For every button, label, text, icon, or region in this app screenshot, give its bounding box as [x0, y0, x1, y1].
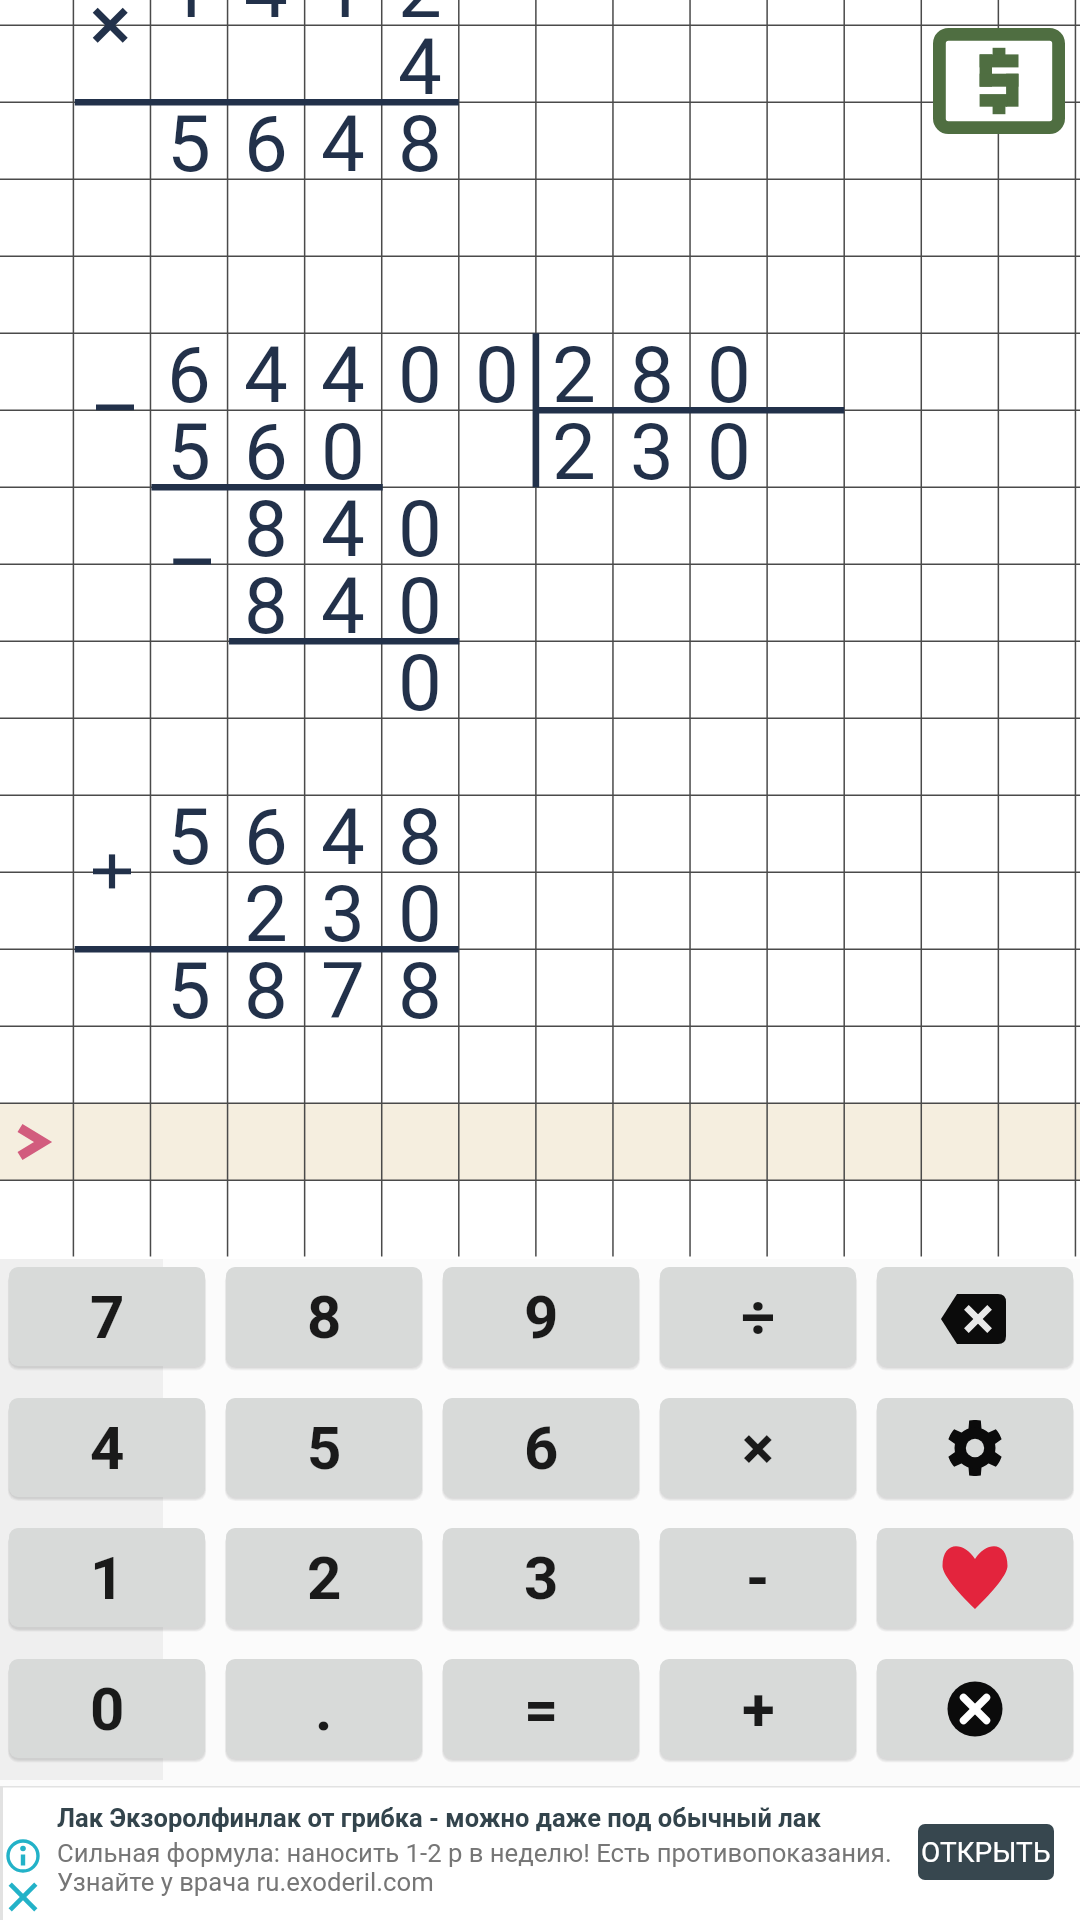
staticText: 0	[90, 1674, 125, 1744]
staticText: 8	[221, 561, 311, 652]
button[interactable]: 7	[9, 1267, 205, 1366]
button[interactable]: Favourites	[877, 1528, 1073, 1627]
button[interactable]: Clear all	[877, 1659, 1073, 1758]
staticText: 6	[144, 330, 234, 421]
staticText: 0	[375, 484, 465, 575]
staticText: 0	[375, 869, 465, 960]
staticText: 0	[452, 330, 542, 421]
staticText: +	[742, 1674, 775, 1744]
staticText: 1	[144, 0, 234, 36]
button[interactable]: 2	[226, 1528, 422, 1627]
staticText: 5	[144, 792, 234, 883]
staticText: 4	[375, 22, 465, 113]
button[interactable]: .	[226, 1659, 422, 1758]
staticText: 1	[298, 0, 388, 36]
staticText: 6	[221, 407, 311, 498]
staticText: 4	[221, 0, 311, 36]
staticText: 5	[144, 407, 234, 498]
staticText: 0	[375, 638, 465, 729]
button[interactable]: =	[443, 1659, 639, 1758]
button[interactable]: 9	[443, 1267, 639, 1366]
staticText: 4	[298, 792, 388, 883]
staticText: 0	[298, 407, 388, 498]
staticText: 3	[524, 1543, 559, 1613]
staticText: Сильная формула: наносить 1-2 р в неделю…	[57, 1838, 892, 1868]
button[interactable]: Backspace	[877, 1267, 1073, 1366]
button[interactable]: 3	[443, 1528, 639, 1627]
staticText: 6	[221, 99, 311, 190]
staticText: 4	[298, 561, 388, 652]
staticText: 8	[375, 792, 465, 883]
staticText: Лак Экзоролфинлак от грибка - можно даже…	[57, 1803, 821, 1833]
staticText: 2	[529, 330, 619, 421]
staticText: 0	[375, 561, 465, 652]
button[interactable]: 5	[226, 1398, 422, 1497]
staticText: 6	[524, 1413, 559, 1483]
staticText: 1	[90, 1543, 125, 1613]
staticText: 8	[375, 99, 465, 190]
staticText: 4	[298, 99, 388, 190]
staticText: 5	[144, 99, 234, 190]
button[interactable]: 0	[9, 1659, 205, 1758]
staticText: 4	[90, 1413, 125, 1483]
button[interactable]: 1	[9, 1528, 205, 1627]
staticText: 2	[221, 869, 311, 960]
staticText: 8	[307, 1282, 342, 1352]
staticText: 0	[684, 407, 774, 498]
button[interactable]: Ad information	[1, 1834, 45, 1878]
button[interactable]: +	[660, 1659, 856, 1758]
staticText: ОТКРЫТЬ	[921, 1836, 1051, 1869]
staticText: 3	[607, 407, 697, 498]
staticText: 5	[307, 1413, 342, 1483]
staticText: ×	[742, 1413, 774, 1483]
staticText: 4	[298, 330, 388, 421]
staticText: ÷	[741, 1282, 776, 1352]
staticText: 5	[144, 946, 234, 1037]
button[interactable]: 6	[443, 1398, 639, 1497]
staticText: 4	[298, 484, 388, 575]
staticText: .	[315, 1674, 333, 1744]
staticText: 2	[307, 1543, 342, 1613]
staticText: 7	[298, 946, 388, 1037]
button[interactable]: Settings	[877, 1398, 1073, 1497]
staticText: 0	[375, 330, 465, 421]
button[interactable]: ÷	[660, 1267, 856, 1366]
staticText: 9	[524, 1282, 559, 1352]
staticText: 6	[221, 792, 311, 883]
staticText: 8	[607, 330, 697, 421]
button[interactable]: ×	[660, 1398, 856, 1497]
button[interactable]: 4	[9, 1398, 205, 1497]
staticText: 3	[298, 869, 388, 960]
button[interactable]: 8	[226, 1267, 422, 1366]
staticText: 7	[90, 1282, 125, 1352]
staticText: 4	[221, 330, 311, 421]
button[interactable]: -	[660, 1528, 856, 1627]
staticText: Узнайте у врача ru.exoderil.com	[57, 1867, 434, 1897]
staticText: -	[746, 1543, 770, 1613]
button[interactable]: Remove ads	[933, 28, 1065, 134]
staticText: =	[524, 1674, 559, 1744]
button[interactable]: Close ad	[1, 1875, 45, 1919]
button[interactable]: ОТКРЫТЬ	[918, 1824, 1054, 1880]
staticText: 2	[529, 407, 619, 498]
staticText: 0	[684, 330, 774, 421]
staticText: 8	[221, 484, 311, 575]
staticText: 8	[375, 946, 465, 1037]
staticText: 8	[221, 946, 311, 1037]
staticText: 2	[375, 0, 465, 36]
